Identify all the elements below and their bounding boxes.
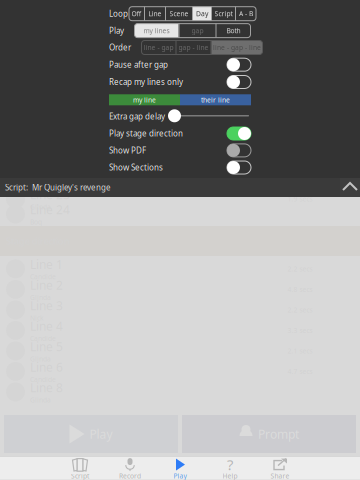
button[interactable]: Off — [129, 7, 144, 21]
staticText: line - gap — [143, 43, 173, 52]
staticText: Script: Mr Quigley's revenge — [5, 182, 111, 193]
button[interactable]: Line — [145, 7, 165, 21]
staticText: Extra gap delay — [109, 111, 165, 122]
button[interactable]: A - B — [236, 7, 256, 21]
staticText: Record — [119, 472, 141, 480]
button[interactable]: Both — [216, 24, 250, 38]
button[interactable]: Collapse panel — [340, 178, 360, 197]
staticText: 1.9 secs — [287, 195, 312, 203]
button[interactable]: Play — [155, 457, 205, 480]
staticText: Line — [148, 9, 161, 18]
staticText: Show PDF — [109, 145, 146, 156]
staticText: Play — [89, 426, 112, 442]
staticText: my lines — [143, 26, 169, 35]
staticText: Scene — [169, 9, 188, 18]
button[interactable]: my line — [109, 94, 180, 105]
staticText: Share — [270, 472, 289, 480]
staticText: Play — [173, 472, 186, 480]
button[interactable]: Day — [193, 7, 211, 21]
button[interactable]: Scene — [166, 7, 192, 21]
staticText: Script — [214, 9, 232, 18]
button[interactable]: Toggle — [227, 144, 251, 157]
button[interactable]: Toggle — [227, 127, 251, 140]
staticText: Day — [196, 9, 208, 18]
button[interactable]: ? — [205, 457, 255, 480]
button[interactable]: Record — [105, 457, 155, 480]
button[interactable]: Script — [212, 7, 235, 21]
staticText: Order — [109, 42, 131, 53]
staticText: A - B — [239, 9, 253, 18]
staticText: Both — [226, 26, 240, 35]
button[interactable]: gap — [179, 24, 215, 38]
staticText: gap - line — [178, 43, 208, 52]
button[interactable]: Toggle — [227, 161, 251, 174]
button[interactable]: Script — [55, 457, 105, 480]
staticText: gap — [191, 26, 203, 35]
button[interactable]: Share — [255, 457, 305, 480]
staticText: Off — [131, 9, 141, 18]
staticText: Pause after gap — [109, 59, 168, 70]
staticText: line - gap - line — [213, 43, 261, 52]
staticText: ? — [227, 455, 233, 474]
staticText: Loop — [109, 8, 128, 19]
button[interactable]: gap - line — [176, 40, 210, 54]
button[interactable]: Toggle — [227, 75, 251, 88]
staticText: Play stage direction — [109, 128, 183, 139]
staticText: Help — [222, 472, 237, 480]
staticText: Show Sections — [109, 162, 163, 173]
staticText: Script — [71, 472, 89, 480]
button[interactable]: Toggle — [227, 58, 251, 71]
staticText: Play — [109, 25, 124, 36]
button[interactable]: my lines — [134, 24, 178, 38]
button[interactable]: Line 23 — [0, 189, 360, 209]
button[interactable]: line - gap — [141, 40, 175, 54]
staticText: my line — [133, 95, 156, 104]
staticText: Recap my lines only — [109, 77, 183, 87]
staticText: Line 23 — [30, 187, 70, 202]
staticText: Prompt — [258, 426, 299, 442]
button[interactable]: their line — [180, 94, 251, 105]
button[interactable]: line - gap - line — [211, 40, 262, 54]
staticText: their line — [201, 95, 230, 104]
